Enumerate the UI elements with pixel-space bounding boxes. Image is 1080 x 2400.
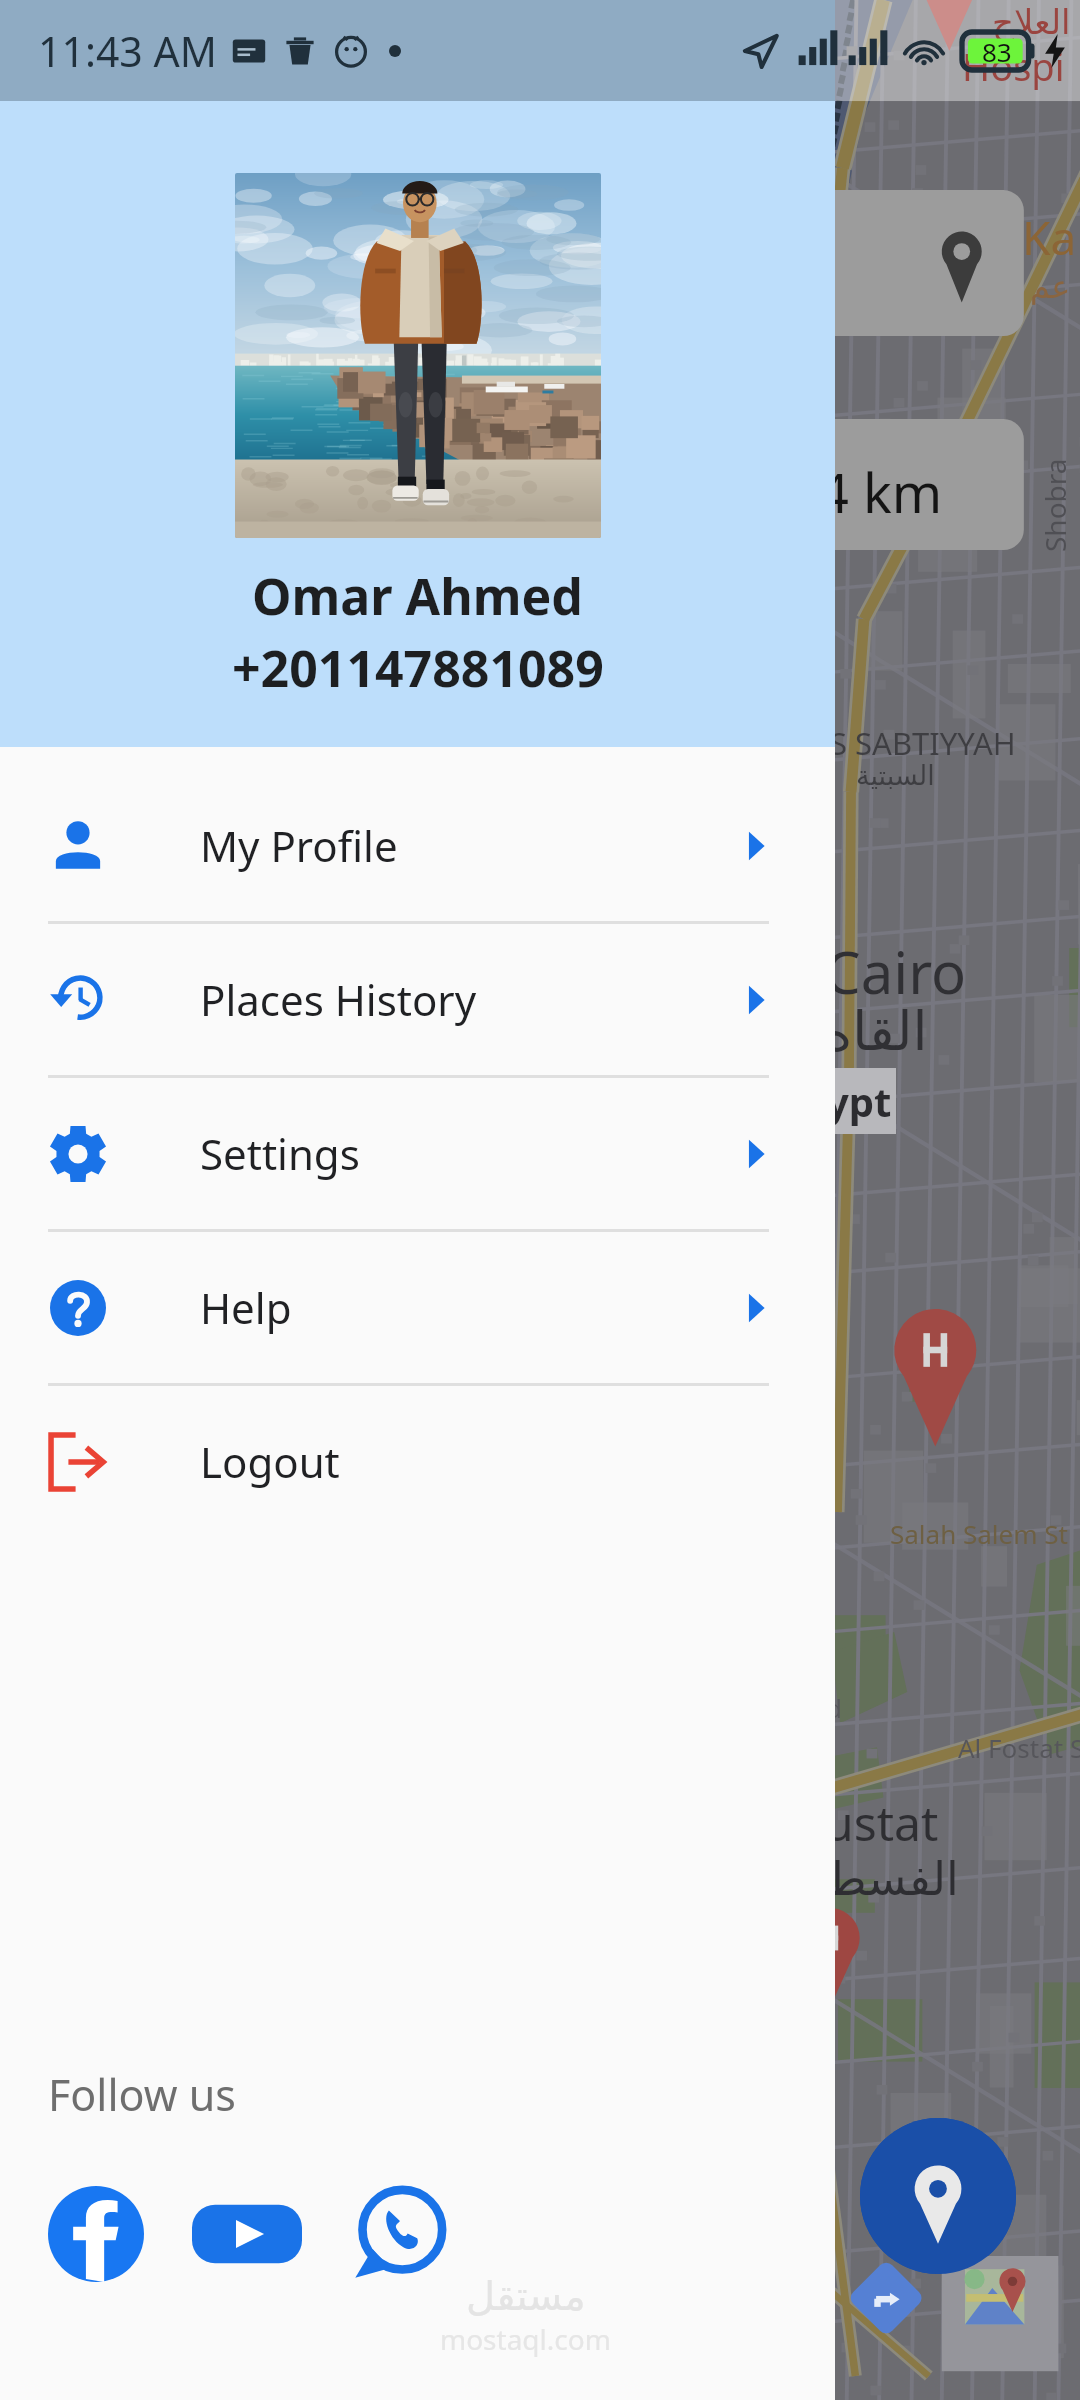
staticText: Omar Ahmed — [252, 562, 583, 630]
staticText: 83 — [982, 34, 1012, 69]
staticText: Hospi — [962, 40, 1065, 92]
button[interactable]: My location — [860, 2118, 1016, 2274]
button[interactable]: WhatsApp — [350, 2186, 446, 2282]
staticText: ypt — [826, 1074, 892, 1128]
button[interactable]: YouTube — [192, 2186, 302, 2282]
staticText: Places History — [200, 971, 477, 1028]
staticText: mostaql.com — [440, 2320, 611, 2358]
staticText: Cairo — [824, 932, 967, 1011]
staticText: Al Fostat St — [958, 1730, 1080, 1765]
staticText: 4 km — [818, 455, 943, 529]
staticText: S SABTIYYAH — [830, 722, 1016, 764]
button[interactable]: Places History — [0, 924, 835, 1075]
staticText: Logout — [200, 1433, 340, 1490]
staticText: Shobra — [1036, 458, 1074, 552]
button[interactable]: Settings — [0, 1078, 835, 1229]
staticText: Salah Salem St — [890, 1516, 1068, 1551]
staticText: My Profile — [200, 817, 398, 874]
button[interactable]: Logout — [0, 1386, 835, 1537]
staticText: القاه — [824, 1000, 928, 1063]
button[interactable]: Facebook — [48, 2186, 144, 2282]
staticText: 11:43 AM — [38, 23, 217, 79]
button[interactable]: Open Google Maps — [942, 2256, 1060, 2372]
staticText: عم — [1030, 268, 1071, 305]
staticText: العلاج — [992, 2, 1071, 42]
staticText: +201147881089 — [232, 634, 604, 702]
staticText: Settings — [200, 1125, 360, 1182]
staticText: الفسط — [824, 1852, 959, 1906]
button[interactable]: My Profile — [0, 770, 835, 921]
staticText: Ka — [1022, 206, 1077, 269]
button[interactable]: Help — [0, 1232, 835, 1383]
staticText: مستقل — [466, 2273, 586, 2320]
staticText: Help — [200, 1279, 292, 1336]
staticText: Follow us — [48, 2065, 236, 2124]
staticText: d — [826, 1690, 842, 1725]
staticText: ustat — [824, 1790, 939, 1855]
button[interactable]: Directions — [856, 2268, 918, 2330]
staticText: السبتية — [856, 760, 935, 791]
